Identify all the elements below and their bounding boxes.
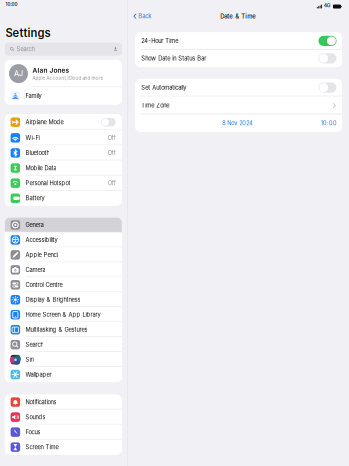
button[interactable]: AJ [5, 60, 122, 87]
button[interactable]: Bluetooth [5, 145, 122, 160]
staticText: Accessibility [25, 236, 57, 243]
staticText: Home Screen & App Library [25, 311, 100, 318]
button[interactable]: Battery [5, 191, 122, 206]
button[interactable]: Focus [5, 425, 122, 440]
button[interactable]: Multitasking & Gestures [5, 322, 122, 337]
staticText: Search [25, 341, 43, 348]
button[interactable]: Wi-Fi [5, 130, 122, 145]
staticText: Battery [25, 195, 44, 202]
staticText: Off [108, 149, 116, 156]
button[interactable]: Sounds [5, 410, 122, 425]
staticText: Display & Brightness [25, 296, 80, 303]
staticText: Apple Account, iCloud and more [32, 75, 103, 81]
staticText: Sounds [25, 414, 45, 420]
button[interactable]: Notifications [5, 395, 122, 410]
button[interactable]: General [5, 217, 122, 232]
staticText: Set Automatically [141, 84, 186, 91]
button[interactable]: Search [5, 337, 122, 352]
button[interactable]: Home Screen & App Library [5, 307, 122, 322]
staticText: Focus [25, 429, 40, 435]
button[interactable]: Personal Hotspot [5, 176, 122, 191]
staticText: Back [138, 13, 151, 20]
staticText: 24-Hour Time [141, 37, 178, 44]
staticText: Personal Hotspot [25, 180, 70, 187]
button[interactable]: Siri [5, 352, 122, 367]
button[interactable]: 8 Nov 2024 [219, 117, 257, 129]
button[interactable]: Screen Time [5, 440, 122, 455]
staticText: Multitasking & Gestures [25, 326, 87, 333]
button[interactable]: Time Zone [135, 96, 342, 114]
staticText: Screen Time [25, 444, 58, 451]
button[interactable]: 10:00 [318, 117, 340, 129]
button[interactable]: Display & Brightness [5, 292, 122, 307]
staticText: Wi-Fi [25, 134, 39, 141]
button[interactable]: Control Centre [5, 277, 122, 292]
staticText: Siri [25, 356, 33, 363]
button[interactable]: Family [5, 87, 122, 105]
button[interactable]: Search [5, 43, 122, 56]
staticText: Apple Pencil [25, 251, 58, 258]
staticText: Time Zone [141, 102, 169, 109]
staticText: Search [17, 46, 35, 52]
staticText: 10:00 [5, 2, 17, 7]
button[interactable]: Airplane Mode [5, 114, 122, 130]
button[interactable]: Mobile Data [5, 160, 122, 176]
staticText: Family [25, 92, 41, 99]
staticText: Settings [5, 26, 50, 40]
staticText: Camera [25, 266, 45, 273]
button[interactable]: Accessibility [5, 232, 122, 247]
staticText: Off [108, 180, 116, 187]
staticText: Show Date in Status Bar [141, 55, 206, 62]
staticText: General [25, 221, 44, 228]
staticText: Mobile Data [25, 165, 56, 171]
staticText: 4G [324, 2, 331, 8]
staticText: Wallpaper [25, 371, 51, 378]
staticText: Bluetooth [25, 149, 49, 156]
staticText: 10:00 [321, 120, 337, 126]
staticText: Date & Time [220, 13, 256, 20]
staticText: Control Centre [25, 281, 62, 288]
staticText: 8 Nov 2024 [222, 120, 253, 126]
button[interactable]: Wallpaper [5, 367, 122, 382]
staticText: Alan Jones [32, 66, 69, 74]
button[interactable]: Apple Pencil [5, 247, 122, 262]
staticText: AJ [14, 69, 23, 78]
staticText: Notifications [25, 399, 56, 405]
staticText: Off [108, 134, 116, 141]
staticText: Airplane Mode [25, 119, 63, 126]
button[interactable]: Back [128, 10, 151, 22]
button[interactable]: Camera [5, 262, 122, 277]
